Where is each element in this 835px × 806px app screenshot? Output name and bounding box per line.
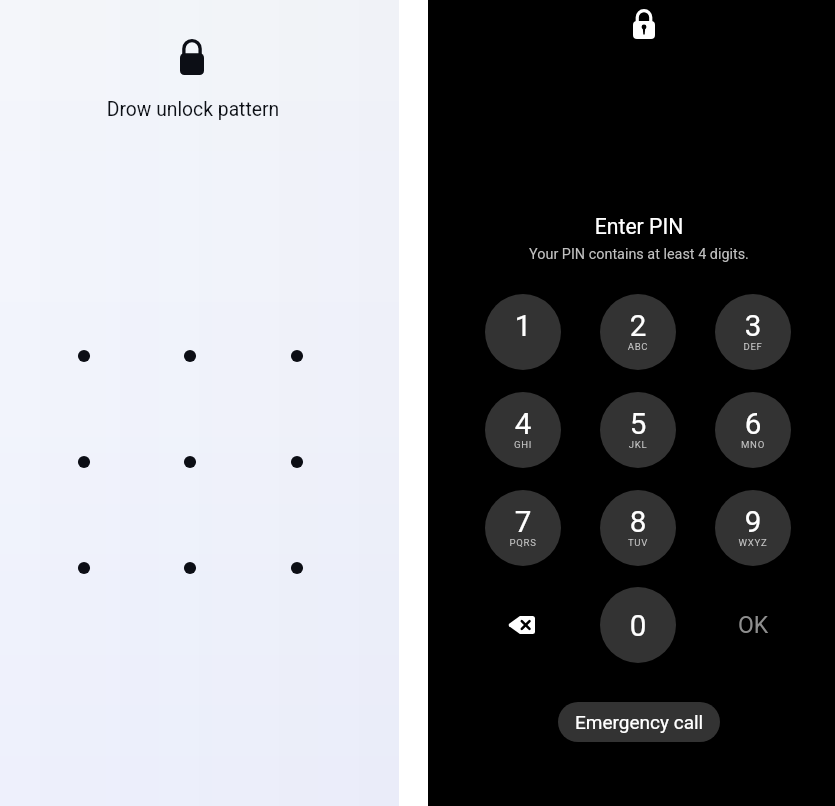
button[interactable]: Delete (496, 599, 548, 651)
staticText: PQRS (485, 537, 561, 548)
staticText: 5 (600, 407, 676, 442)
button[interactable]: 9 (715, 490, 791, 566)
staticText: Enter PIN (489, 214, 789, 239)
button[interactable]: 7 (485, 490, 561, 566)
staticText: WXYZ (715, 537, 791, 548)
button[interactable]: 0 (600, 587, 676, 663)
staticText: DEF (715, 341, 791, 352)
staticText: Your PIN contains at least 4 digits. (469, 246, 809, 263)
staticText: 1 (485, 309, 561, 344)
button[interactable]: 2 (600, 294, 676, 370)
staticText: 3 (715, 309, 791, 344)
staticText: JKL (600, 439, 676, 450)
button[interactable]: Pattern dot 4 (58, 436, 110, 488)
button[interactable]: Pattern dot 8 (164, 542, 216, 594)
button[interactable]: 4 (485, 392, 561, 468)
button[interactable]: Pattern dot 2 (164, 330, 216, 382)
staticText: Drow unlock pattern (63, 98, 323, 121)
button[interactable]: Pattern dot 3 (271, 330, 323, 382)
staticText: TUV (600, 537, 676, 548)
staticText: MNO (715, 439, 791, 450)
button[interactable]: Emergency call (558, 702, 720, 742)
other: Locked (172, 33, 212, 81)
button[interactable]: 5 (600, 392, 676, 468)
button[interactable]: OK (719, 599, 787, 651)
staticText: 6 (715, 407, 791, 442)
button[interactable]: Pattern dot 1 (58, 330, 110, 382)
other: Locked (624, 0, 664, 48)
button[interactable]: Pattern dot 6 (271, 436, 323, 488)
button[interactable]: Pattern dot 7 (58, 542, 110, 594)
staticText: 8 (600, 505, 676, 540)
button[interactable]: 8 (600, 490, 676, 566)
staticText: 9 (715, 505, 791, 540)
staticText: 0 (600, 609, 676, 644)
staticText: 7 (485, 505, 561, 540)
button[interactable]: Pattern dot 9 (271, 542, 323, 594)
button[interactable]: 6 (715, 392, 791, 468)
staticText: OK (738, 612, 769, 639)
staticText: ABC (600, 341, 676, 352)
staticText: GHI (485, 439, 561, 450)
button[interactable]: 3 (715, 294, 791, 370)
button[interactable]: Pattern dot 5 (164, 436, 216, 488)
staticText: 4 (485, 407, 561, 442)
staticText: 2 (600, 309, 676, 344)
button[interactable]: 1 (485, 294, 561, 370)
staticText: Emergency call (575, 711, 704, 733)
